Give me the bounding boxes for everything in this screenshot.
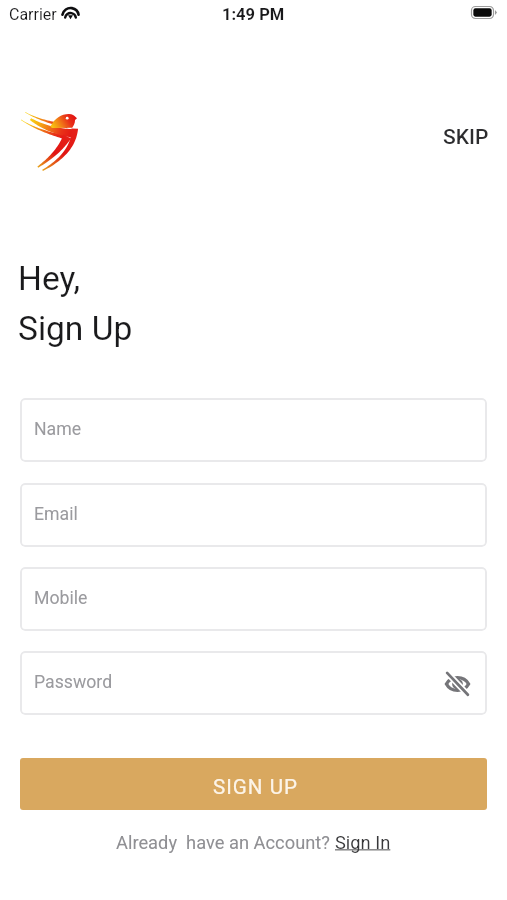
button[interactable]: Show password	[441, 667, 473, 699]
staticText: SIGN UP	[213, 775, 299, 799]
button[interactable]: Name	[20, 398, 487, 462]
staticText: Name	[34, 419, 82, 440]
staticText: Sign Up	[18, 309, 133, 348]
button[interactable]: Mobile	[20, 567, 487, 631]
button[interactable]: Sign In	[335, 832, 391, 853]
staticText: Already have an Account?	[116, 832, 335, 853]
button[interactable]: Email	[20, 483, 487, 547]
staticText: SKIP	[443, 125, 489, 150]
button[interactable]: SIGN UP	[20, 758, 487, 810]
button[interactable]: SKIP	[435, 119, 497, 156]
staticText: 1:49 PM	[222, 5, 285, 24]
staticText: Carrier	[9, 5, 57, 24]
staticText: Sign In	[335, 832, 391, 853]
staticText: Mobile	[34, 588, 88, 609]
staticText: Email	[34, 504, 78, 525]
staticText: Password	[34, 672, 113, 693]
staticText: Hey,	[18, 259, 81, 298]
button[interactable]: Password	[20, 651, 487, 715]
